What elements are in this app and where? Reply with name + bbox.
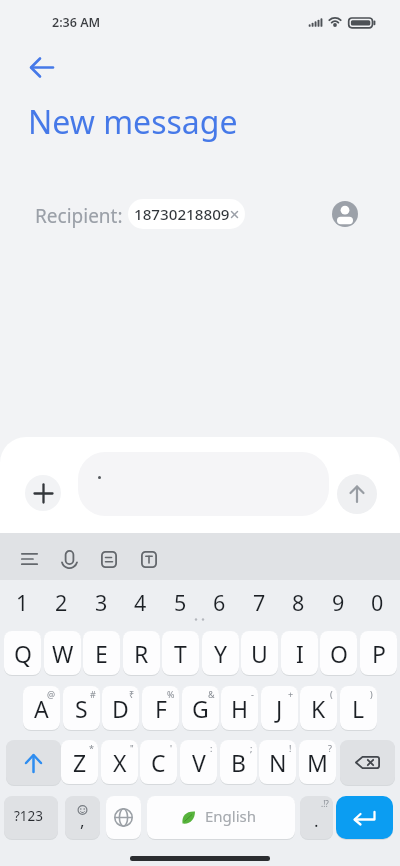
staticText: 2:36 AM xyxy=(52,14,101,31)
button[interactable]: Q xyxy=(4,631,41,675)
button[interactable]: 1 xyxy=(3,587,42,617)
button[interactable]: Y xyxy=(202,631,239,675)
staticText: 1 xyxy=(16,588,29,617)
staticText: T xyxy=(174,638,187,669)
button[interactable]: K xyxy=(300,686,337,730)
staticText: 7 xyxy=(253,588,266,617)
staticText: + xyxy=(288,688,294,700)
staticText: , xyxy=(80,809,85,832)
button[interactable] xyxy=(56,546,82,572)
button[interactable]: 0 xyxy=(358,587,397,617)
staticText: S xyxy=(75,693,88,724)
staticText: O xyxy=(330,638,348,669)
button[interactable]: 5 xyxy=(161,587,200,617)
button[interactable]: 18730218809 xyxy=(128,199,245,229)
staticText: ?123 xyxy=(14,807,44,825)
button[interactable]: 6 xyxy=(200,587,239,617)
button[interactable]: 2 xyxy=(42,587,81,617)
staticText: I xyxy=(296,638,304,669)
button[interactable]: R xyxy=(123,631,160,675)
button[interactable]: Z xyxy=(61,740,98,784)
button[interactable]: 3 xyxy=(82,587,121,617)
staticText: W xyxy=(52,638,74,669)
staticText: 8 xyxy=(292,588,305,617)
button[interactable] xyxy=(96,546,122,572)
button[interactable]: I xyxy=(281,631,318,675)
staticText: 3 xyxy=(95,588,108,617)
staticText: # xyxy=(90,688,96,700)
staticText: English xyxy=(205,806,257,826)
staticText: Y xyxy=(214,638,228,669)
staticText: Recipient: xyxy=(35,203,123,229)
staticText: 9 xyxy=(332,588,345,617)
staticText: J xyxy=(276,693,283,724)
button[interactable]: 8 xyxy=(279,587,318,617)
staticText: New message xyxy=(28,100,238,144)
button[interactable]: S xyxy=(63,686,100,730)
staticText: G xyxy=(192,693,209,724)
button[interactable]: T xyxy=(162,631,199,675)
staticText: . xyxy=(314,809,319,832)
button[interactable]: 9 xyxy=(319,587,358,617)
button[interactable] xyxy=(340,740,395,785)
button[interactable]: N xyxy=(259,740,296,784)
staticText: C xyxy=(151,747,166,778)
button[interactable]: X xyxy=(101,740,138,784)
staticText: 4 xyxy=(134,588,147,617)
button[interactable] xyxy=(336,796,393,839)
button[interactable]: L xyxy=(340,686,377,730)
button[interactable] xyxy=(337,474,377,514)
button[interactable]: W xyxy=(44,631,81,675)
staticText: Q xyxy=(14,638,32,669)
staticText: ? xyxy=(328,742,332,754)
button[interactable]: , xyxy=(65,796,100,839)
button[interactable]: A xyxy=(23,686,60,730)
staticText: .!? xyxy=(321,798,329,809)
staticText: L xyxy=(352,693,365,724)
staticText: ₹ xyxy=(129,688,135,700)
button[interactable]: G xyxy=(182,686,219,730)
button[interactable]: M xyxy=(299,740,336,784)
staticText: P xyxy=(372,638,386,669)
staticText: U xyxy=(251,638,268,669)
staticText: & xyxy=(208,688,215,700)
button[interactable] xyxy=(106,796,141,839)
staticText: 5 xyxy=(174,588,187,617)
button[interactable]: J xyxy=(261,686,298,730)
staticText: F xyxy=(155,693,167,724)
staticText: ) xyxy=(370,688,373,700)
button[interactable]: U xyxy=(241,631,278,675)
button[interactable]: O xyxy=(320,631,357,675)
staticText: 0 xyxy=(371,588,384,617)
staticText: M xyxy=(307,747,328,778)
button[interactable]: D xyxy=(102,686,139,730)
button[interactable] xyxy=(16,546,42,572)
button[interactable]: F xyxy=(142,686,179,730)
staticText: ! xyxy=(289,742,292,754)
button[interactable]: ?123 xyxy=(4,796,58,839)
button[interactable]: V xyxy=(180,740,217,784)
button[interactable] xyxy=(22,50,62,86)
staticText: 6 xyxy=(213,588,226,617)
staticText: ; xyxy=(250,742,253,754)
button[interactable]: B xyxy=(220,740,257,784)
button[interactable]: 4 xyxy=(121,587,160,617)
staticText: D xyxy=(112,693,129,724)
button[interactable] xyxy=(6,740,61,785)
button[interactable] xyxy=(331,200,359,228)
button[interactable] xyxy=(25,475,61,511)
button[interactable]: English xyxy=(147,796,295,839)
staticText: B xyxy=(231,747,246,778)
button[interactable]: . xyxy=(300,796,333,839)
button[interactable] xyxy=(78,452,329,516)
staticText: K xyxy=(311,693,326,724)
staticText: E xyxy=(95,638,108,669)
button[interactable]: P xyxy=(360,631,397,675)
staticText: * xyxy=(89,742,94,754)
staticText: X xyxy=(113,747,127,778)
button[interactable]: C xyxy=(140,740,177,784)
button[interactable]: H xyxy=(221,686,258,730)
button[interactable]: E xyxy=(83,631,120,675)
button[interactable]: 7 xyxy=(240,587,279,617)
button[interactable] xyxy=(136,546,162,572)
